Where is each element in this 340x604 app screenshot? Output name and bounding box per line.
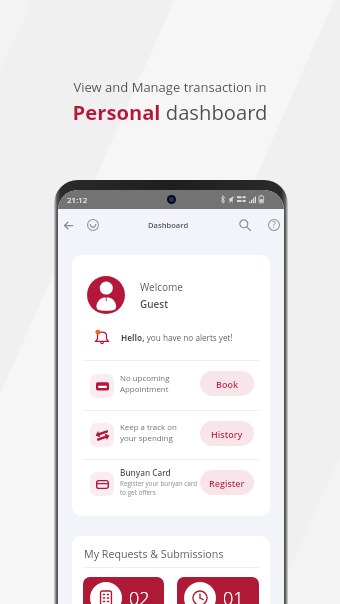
button[interactable]: Register — [200, 470, 254, 495]
staticText: 21:12 — [67, 194, 88, 205]
staticText: Guest — [140, 297, 169, 311]
staticText: History — [211, 428, 243, 440]
staticText: Register your bunyan card — [120, 479, 198, 488]
button[interactable]: Profile — [85, 217, 101, 233]
staticText: your spending — [120, 433, 173, 444]
staticText: Personal dashboard — [0, 98, 340, 126]
button[interactable]: Search — [237, 217, 253, 233]
staticText: Bunyan Card — [120, 467, 171, 478]
staticText: to get offers — [120, 488, 156, 497]
button[interactable]: 02 — [83, 577, 164, 604]
staticText: 01 — [223, 586, 244, 604]
button[interactable]: Book — [200, 371, 254, 396]
staticText: Appointment — [120, 384, 169, 395]
staticText: Register — [209, 477, 245, 489]
button[interactable]: Back — [60, 217, 76, 233]
staticText: Hello, you have no alerts yet! — [121, 332, 233, 343]
staticText: ? — [272, 219, 276, 231]
staticText: Welcome — [140, 280, 183, 294]
staticText: Book — [216, 378, 239, 390]
staticText: No upcoming — [120, 373, 170, 384]
staticText: 02 — [129, 586, 150, 604]
staticText: My Requests & Submissions — [84, 547, 224, 562]
button[interactable]: History — [200, 421, 254, 446]
staticText: Dashboard — [148, 220, 189, 230]
button[interactable]: Help — [266, 217, 282, 233]
button[interactable]: 01 — [177, 577, 259, 604]
staticText: Keep a track on — [120, 422, 177, 433]
staticText: View and Manage transaction in — [0, 78, 340, 96]
